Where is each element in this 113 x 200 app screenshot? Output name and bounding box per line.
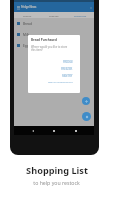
button[interactable]: FRIDGE — [14, 12, 40, 18]
staticText: Bread — [23, 22, 32, 26]
staticText: SHOPPING — [74, 14, 87, 17]
button[interactable]: PANTRY — [62, 72, 73, 79]
staticText: to help you restock — [33, 179, 80, 186]
button[interactable]: Eggs — [17, 40, 94, 51]
staticText: Bread Purchased — [31, 38, 57, 42]
button[interactable]: SHOPPING — [67, 12, 94, 18]
button[interactable]: FREEZER — [61, 65, 73, 72]
button[interactable]: Recent apps — [73, 128, 79, 134]
button[interactable]: Bread — [17, 18, 94, 29]
staticText: PANTRY — [62, 74, 73, 78]
staticText: FRIDGE — [23, 14, 32, 17]
button[interactable]: FRIDGE — [63, 58, 73, 65]
staticText: Where would you like to store this item? — [31, 45, 68, 51]
button[interactable]: FREEZER — [40, 12, 67, 18]
button[interactable]: Scan barcode — [82, 112, 91, 121]
staticText: FREEZER — [49, 14, 59, 17]
staticText: FREEZER — [61, 67, 73, 71]
button[interactable]: Back — [30, 128, 36, 134]
button[interactable]: Milk — [17, 29, 94, 40]
staticText: FRIDGE — [63, 60, 73, 64]
button[interactable]: KEEP ON SHOPPING LIST — [48, 79, 73, 86]
staticText: KEEP ON SHOPPING LIST — [48, 81, 73, 84]
staticText: Shopping List — [26, 164, 88, 177]
staticText: Fridge News — [21, 5, 37, 9]
button[interactable]: Add item — [82, 97, 90, 105]
button[interactable]: More options — [88, 5, 93, 10]
button[interactable]: Home — [51, 128, 57, 134]
staticText: Eggs — [23, 44, 31, 48]
button[interactable]: Navigation menu — [15, 4, 21, 10]
staticText: Milk — [23, 33, 30, 37]
